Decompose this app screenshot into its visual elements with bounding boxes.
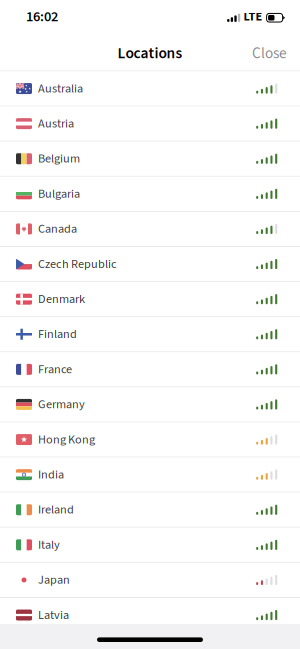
staticText: Italy [38,536,60,554]
button[interactable]: Hong Kong [0,422,300,458]
button[interactable]: Italy [0,528,300,563]
staticText: Locations [117,42,182,64]
staticText: Belgium [38,150,80,167]
button[interactable]: Finland [0,317,300,352]
staticText: Latvia [38,606,69,624]
button[interactable]: Czech Republic [0,247,300,282]
button[interactable]: Ireland [0,493,300,528]
button[interactable]: Latvia [0,598,300,633]
staticText: Bulgaria [38,185,80,203]
staticText: Finland [38,325,77,343]
staticText: Austria [38,115,74,132]
staticText: Japan [38,571,70,589]
button[interactable]: Belgium [0,142,300,177]
staticText: India [38,466,64,483]
button[interactable]: Canada [0,212,300,247]
staticText: LTE [244,8,263,25]
staticText: Germany [38,396,85,413]
staticText: Australia [38,80,83,97]
staticText: Close [252,43,287,64]
button[interactable]: Austria [0,107,300,142]
button[interactable]: Germany [0,387,300,422]
button[interactable]: France [0,352,300,387]
staticText: Denmark [38,290,85,308]
button[interactable]: India [0,458,300,493]
button[interactable]: Close [246,38,293,69]
staticText: Czech Republic [38,255,117,273]
staticText: France [38,361,72,378]
staticText: Hong Kong [38,431,95,448]
button[interactable]: Japan [0,563,300,598]
staticText: Canada [38,220,77,238]
button[interactable]: Australia [0,71,300,107]
button[interactable]: Bulgaria [0,177,300,212]
staticText: 16:02 [26,6,58,27]
staticText: Ireland [38,501,74,518]
button[interactable]: Denmark [0,282,300,317]
